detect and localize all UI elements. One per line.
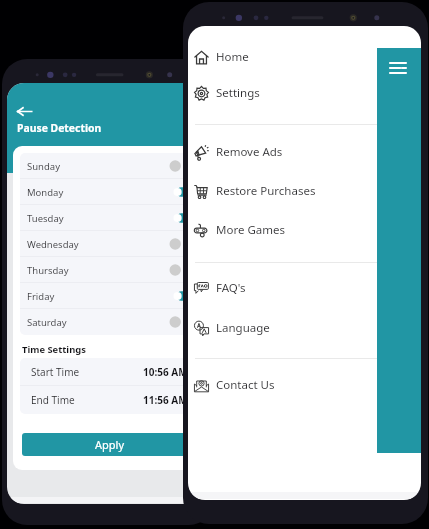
staticText: Settings — [216, 85, 260, 101]
button[interactable]: Open navigation menu — [377, 48, 421, 453]
staticText: Contact Us — [216, 377, 275, 393]
button[interactable]: Friday — [20, 283, 198, 309]
button[interactable]: Monday — [20, 179, 198, 205]
button[interactable]: Tuesday — [20, 205, 198, 231]
staticText: Restore Purchases — [216, 183, 316, 199]
staticText: Saturday — [27, 316, 67, 329]
staticText: Tuesday — [27, 212, 64, 225]
staticText: Pause Detection — [17, 121, 102, 135]
staticText: More Games — [216, 222, 285, 238]
staticText: 11:56 AM — [143, 393, 188, 407]
staticText: End Time — [31, 393, 75, 407]
button[interactable]: Wednesday — [20, 231, 198, 257]
button[interactable]: Restore Purchases — [188, 180, 421, 202]
button[interactable]: Sunday — [20, 153, 198, 179]
staticText: Language — [216, 320, 270, 336]
staticText: Thursday — [27, 264, 69, 277]
button[interactable]: More Games — [188, 219, 421, 241]
staticText: FAQ's — [216, 280, 246, 296]
staticText: Home — [216, 49, 249, 65]
button[interactable]: Remove Ads — [188, 141, 421, 163]
button[interactable]: Language — [188, 317, 421, 339]
staticText: Apply — [95, 437, 125, 452]
button[interactable]: Home — [188, 46, 421, 68]
staticText: Sunday — [27, 160, 60, 173]
button[interactable]: Apply — [22, 433, 197, 456]
staticText: 10:56 AM — [143, 365, 188, 379]
button[interactable]: Settings — [188, 82, 421, 104]
button[interactable]: End Time — [20, 386, 198, 414]
button[interactable]: Contact Us — [188, 374, 421, 396]
button[interactable]: Back — [17, 104, 32, 119]
button[interactable]: FAQ's — [188, 277, 421, 299]
button[interactable]: Start Time — [20, 358, 198, 386]
staticText: Friday — [27, 290, 55, 303]
staticText: Remove Ads — [216, 144, 283, 160]
staticText: Wednesday — [27, 238, 79, 251]
staticText: Start Time — [31, 365, 80, 379]
button[interactable]: Thursday — [20, 257, 198, 283]
staticText: Monday — [27, 186, 64, 199]
button[interactable]: Saturday — [20, 309, 198, 335]
staticText: Time Settings — [22, 343, 86, 356]
